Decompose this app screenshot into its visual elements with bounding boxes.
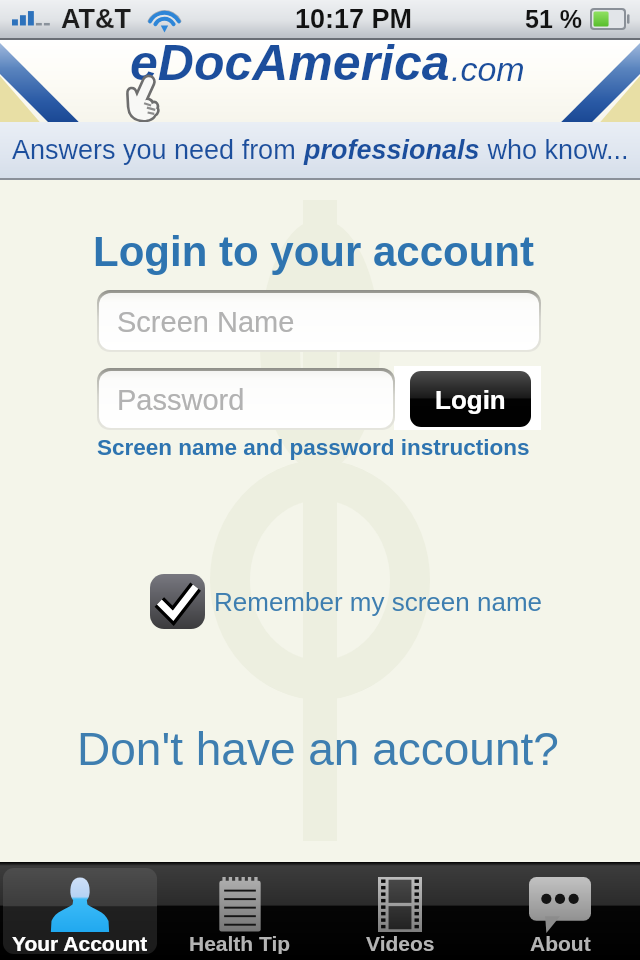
staticText: Remember my screen name	[214, 587, 542, 616]
button[interactable]: Health Tip	[163, 868, 317, 954]
staticText: Your Account	[12, 932, 148, 954]
button[interactable]: Remember my screen name	[150, 574, 542, 629]
staticText: professionals	[304, 135, 480, 165]
button[interactable]: Screen name and password instructions	[97, 435, 530, 460]
button[interactable]: Videos	[323, 868, 477, 954]
staticText: Answers you need from	[12, 135, 304, 165]
staticText: About	[530, 932, 591, 954]
button[interactable]: About	[483, 868, 637, 954]
staticText: eDocAmerica	[130, 35, 450, 91]
staticText: 51 %	[525, 5, 582, 33]
button[interactable]: Your Account	[3, 868, 157, 954]
button[interactable]: Login	[410, 371, 531, 427]
staticText: AT&T	[61, 4, 131, 34]
staticText: Health Tip	[189, 932, 291, 954]
staticText: .com	[451, 50, 525, 88]
button[interactable]: Don't have an account?	[77, 723, 559, 774]
staticText: who know...	[480, 135, 629, 165]
button[interactable]: Screen Name	[99, 293, 539, 350]
staticText: Login to your account	[93, 228, 534, 275]
staticText: Login	[435, 385, 506, 414]
staticText: 10:17 PM	[295, 4, 413, 34]
button[interactable]: Password	[99, 371, 393, 428]
staticText: Videos	[366, 932, 435, 954]
staticText: Screen Name	[117, 306, 295, 338]
staticText: Password	[117, 384, 245, 416]
